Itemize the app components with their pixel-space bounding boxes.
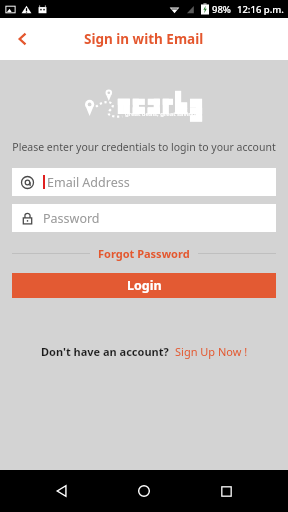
button[interactable]: Login	[12, 273, 276, 298]
button[interactable]: Forgot Password	[90, 246, 198, 261]
staticText: 12:16 p.m.	[237, 3, 284, 16]
staticText: Email Address	[47, 174, 130, 191]
button[interactable]: Email Address	[12, 168, 276, 196]
button[interactable]: Password	[12, 204, 276, 232]
staticText: 98%	[212, 3, 231, 16]
button[interactable]: Recent apps	[206, 471, 246, 511]
staticText: Don't have an account?	[41, 344, 169, 359]
staticText: Please enter your credentials to login t…	[0, 140, 288, 154]
staticText: Sign Up Now !	[175, 344, 248, 359]
staticText: great deals, great savings	[125, 110, 199, 118]
staticText: Sign in with Email	[84, 30, 204, 48]
button[interactable]: Back	[42, 471, 82, 511]
staticText: Password	[43, 210, 100, 227]
button[interactable]: Back	[8, 24, 38, 54]
staticText: Forgot Password	[98, 246, 190, 261]
button[interactable]: Home	[124, 471, 164, 511]
staticText: Login	[127, 277, 162, 294]
button[interactable]: Sign Up Now !	[175, 344, 248, 359]
